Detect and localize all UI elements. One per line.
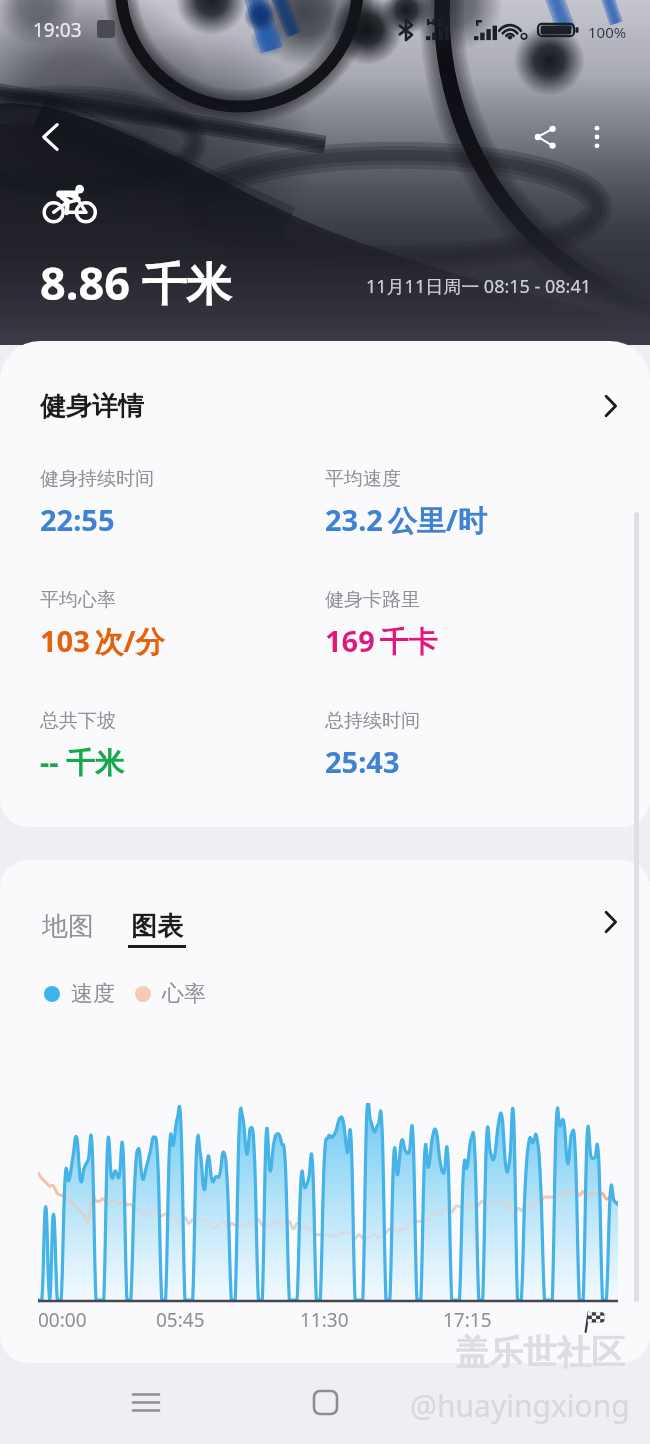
button[interactable]: 健身详情 bbox=[40, 386, 624, 426]
button[interactable]: Home bbox=[292, 1369, 358, 1435]
staticText: 8.86 千米 bbox=[40, 252, 232, 313]
staticText: 心率 bbox=[162, 980, 206, 1008]
staticText: 05:45 bbox=[156, 1307, 205, 1333]
staticText: 25:43 bbox=[325, 742, 400, 781]
staticText: 健身卡路里 bbox=[325, 588, 420, 612]
button[interactable]: Share bbox=[516, 108, 574, 166]
staticText: 22:55 bbox=[40, 500, 115, 539]
button[interactable]: Back bbox=[471, 1369, 537, 1435]
button[interactable]: Back bbox=[22, 108, 80, 166]
button[interactable]: 图表 bbox=[126, 904, 188, 954]
staticText: 总共下坡 bbox=[40, 709, 116, 733]
staticText: 169 千卡 bbox=[325, 621, 438, 661]
staticText: 平均速度 bbox=[325, 467, 401, 491]
button[interactable]: 地图 bbox=[38, 904, 98, 949]
staticText: 健身详情 bbox=[40, 390, 144, 423]
staticText: 地图 bbox=[42, 910, 94, 943]
staticText: 23.2 公里/时 bbox=[325, 500, 487, 540]
staticText: 健身持续时间 bbox=[40, 467, 154, 491]
button[interactable]: Recent apps bbox=[113, 1369, 179, 1435]
staticText: 100% bbox=[588, 22, 627, 42]
staticText: 总持续时间 bbox=[325, 709, 420, 733]
staticText: -- 千米 bbox=[40, 742, 125, 782]
staticText: 103 次/分 bbox=[40, 621, 165, 661]
staticText: 19:03 bbox=[33, 17, 82, 43]
staticText: @huayingxiong bbox=[410, 1385, 630, 1426]
staticText: 图表 bbox=[131, 910, 183, 943]
staticText: 17:15 bbox=[443, 1307, 492, 1333]
staticText: 速度 bbox=[71, 980, 115, 1008]
staticText: 11:30 bbox=[300, 1307, 349, 1333]
staticText: 平均心率 bbox=[40, 588, 116, 612]
staticText: 00:00 bbox=[38, 1307, 87, 1333]
staticText: 盖乐世社区 bbox=[455, 1331, 625, 1374]
button[interactable]: More options bbox=[568, 108, 626, 166]
staticText: 11月11日周一 08:15 - 08:41 bbox=[366, 274, 592, 299]
